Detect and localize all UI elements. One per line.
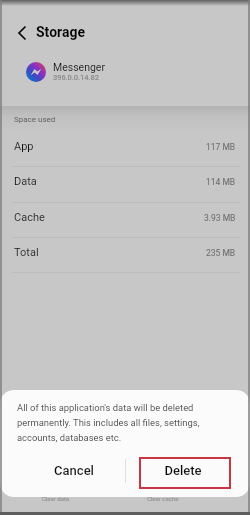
staticText: Storage: [36, 24, 86, 40]
staticText: 235 MB: [206, 248, 236, 258]
staticText: Space used: [14, 115, 56, 124]
button[interactable]: Total: [0, 235, 250, 270]
staticText: Clear cache: [147, 495, 179, 502]
staticText: Cancel: [54, 463, 94, 478]
staticText: App: [14, 140, 34, 153]
button[interactable]: Cancel: [24, 455, 124, 485]
staticText: 3.93 MB: [204, 213, 236, 223]
button[interactable]: Data: [0, 164, 250, 199]
staticText: Delete: [164, 463, 202, 478]
button[interactable]: [11, 21, 35, 45]
staticText: Total: [14, 246, 39, 259]
staticText: Data: [14, 175, 37, 188]
staticText: Messenger: [53, 61, 105, 73]
button[interactable]: App: [0, 129, 250, 164]
staticText: accounts, databases etc.: [17, 432, 122, 443]
staticText: Clear data: [42, 495, 70, 502]
staticText: 114 MB: [206, 177, 236, 187]
staticText: 396.0.0.14.82: [53, 73, 99, 82]
button[interactable]: Delete: [133, 455, 233, 485]
staticText: permanently. This includes all files, se…: [17, 417, 200, 428]
staticText: All of this application's data will be d…: [17, 402, 194, 413]
staticText: 117 MB: [206, 142, 236, 152]
button[interactable]: Cache: [0, 200, 250, 235]
staticText: Cache: [14, 211, 45, 224]
